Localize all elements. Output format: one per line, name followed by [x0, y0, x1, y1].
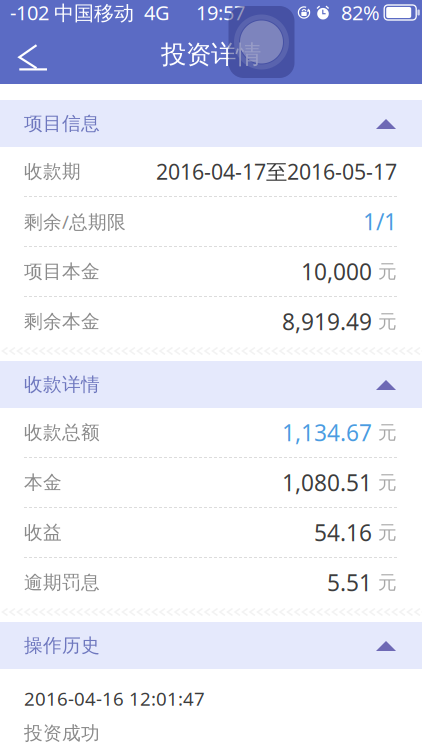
staticText: 元: [372, 471, 397, 494]
staticText: 2016-04-17至2016-05-17: [156, 157, 397, 186]
staticText: 收款详情: [24, 373, 100, 396]
staticText: 5.51: [327, 567, 372, 597]
staticText: 投资成功: [24, 722, 100, 745]
staticText: 元: [372, 571, 397, 594]
staticText: 投资详情: [161, 39, 261, 70]
button[interactable]: AssistiveTouch: [228, 6, 295, 78]
staticText: 元: [372, 260, 397, 283]
staticText: 逾期罚息: [24, 571, 100, 594]
button[interactable]: 项目信息: [0, 100, 422, 147]
staticText: 收益: [24, 521, 62, 544]
staticText: 82%: [341, 0, 380, 26]
button[interactable]: 操作历史: [0, 622, 422, 669]
staticText: 剩余本金: [24, 310, 100, 333]
staticText: 项目信息: [24, 112, 100, 135]
staticText: 元: [372, 421, 397, 444]
staticText: 收款期: [24, 160, 81, 183]
staticText: 10,000: [301, 256, 372, 286]
staticText: 1/1: [363, 206, 397, 236]
staticText: 元: [372, 310, 397, 333]
staticText: 收款总额: [24, 421, 100, 444]
staticText: 剩余/总期限: [24, 209, 126, 234]
button[interactable]: Back: [0, 27, 65, 82]
staticText: 项目本金: [24, 260, 100, 283]
staticText: 元: [372, 521, 397, 544]
staticText: 操作历史: [24, 634, 100, 657]
staticText: 2016-04-16 12:01:47: [24, 686, 205, 711]
staticText: 54.16: [314, 517, 372, 547]
staticText: 1,080.51: [282, 467, 372, 497]
button[interactable]: 收款详情: [0, 361, 422, 408]
staticText: 1,134.67: [282, 417, 372, 447]
staticText: 本金: [24, 471, 62, 494]
staticText: 8,919.49: [282, 306, 372, 336]
staticText: -102 中国移动 4G: [10, 0, 170, 26]
staticText: 19:57: [196, 0, 245, 26]
